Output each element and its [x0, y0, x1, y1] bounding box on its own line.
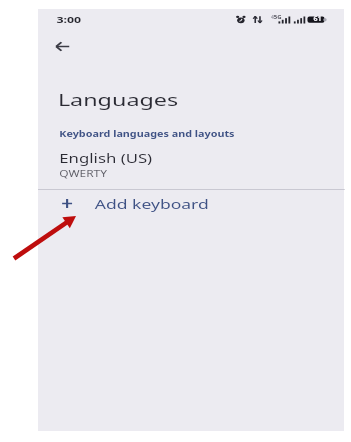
button[interactable]: English (US) [38, 147, 345, 180]
staticText: 5G [274, 13, 281, 20]
staticText: 61 [313, 14, 322, 23]
staticText: 4 [271, 14, 274, 20]
staticText: Languages [58, 89, 179, 111]
staticText: QWERTY [59, 168, 108, 179]
staticText: Keyboard languages and layouts [59, 128, 235, 140]
staticText: Add keyboard [95, 196, 210, 212]
button[interactable]: Back [49, 35, 75, 57]
staticText: 3:00 [56, 14, 82, 26]
staticText: English (US) [59, 150, 153, 166]
button[interactable]: Add keyboard [38, 190, 345, 217]
